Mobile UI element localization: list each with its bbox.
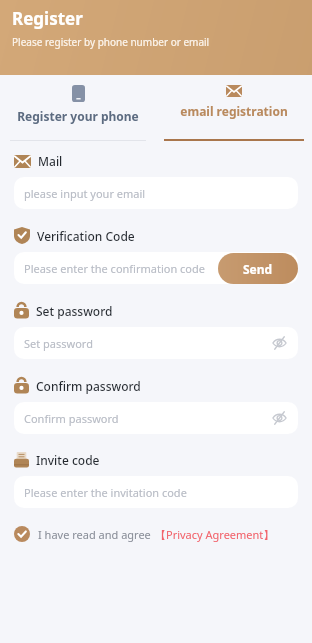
staticText: Register [12,7,83,30]
staticText: I have read and agree [38,527,151,542]
staticText: Invite code [36,452,100,468]
button[interactable]: please input your email [14,177,298,209]
button[interactable]: Confirm password [14,402,298,434]
staticText: Set password [24,336,93,351]
staticText: Send [243,261,273,277]
button[interactable]: email registration [156,75,312,141]
button[interactable]: Set password [14,327,298,359]
staticText: Please enter the invitation code [24,485,187,500]
button[interactable]: Show password [270,409,288,427]
button[interactable]: Please enter the confirmation code [14,252,298,284]
staticText: Set password [36,303,113,319]
staticText: Confirm password [24,411,119,426]
button[interactable]: I have read and agree [14,526,312,542]
button[interactable]: 【Privacy Agreement】 [155,527,275,542]
staticText: 【Privacy Agreement】 [155,527,275,542]
button[interactable]: Please enter the invitation code [14,476,298,508]
staticText: email registration [180,103,288,119]
staticText: please input your email [24,186,146,201]
staticText: Verification Code [37,228,135,244]
staticText: Confirm password [36,378,141,394]
staticText: Mail [38,153,63,169]
button[interactable]: Show password [270,334,288,352]
staticText: Please enter the confirmation code [24,261,205,276]
staticText: Register your phone [17,108,139,124]
button[interactable]: Register your phone [0,75,156,141]
staticText: Please register by phone number or email [12,35,210,49]
button[interactable]: Send [218,253,298,284]
